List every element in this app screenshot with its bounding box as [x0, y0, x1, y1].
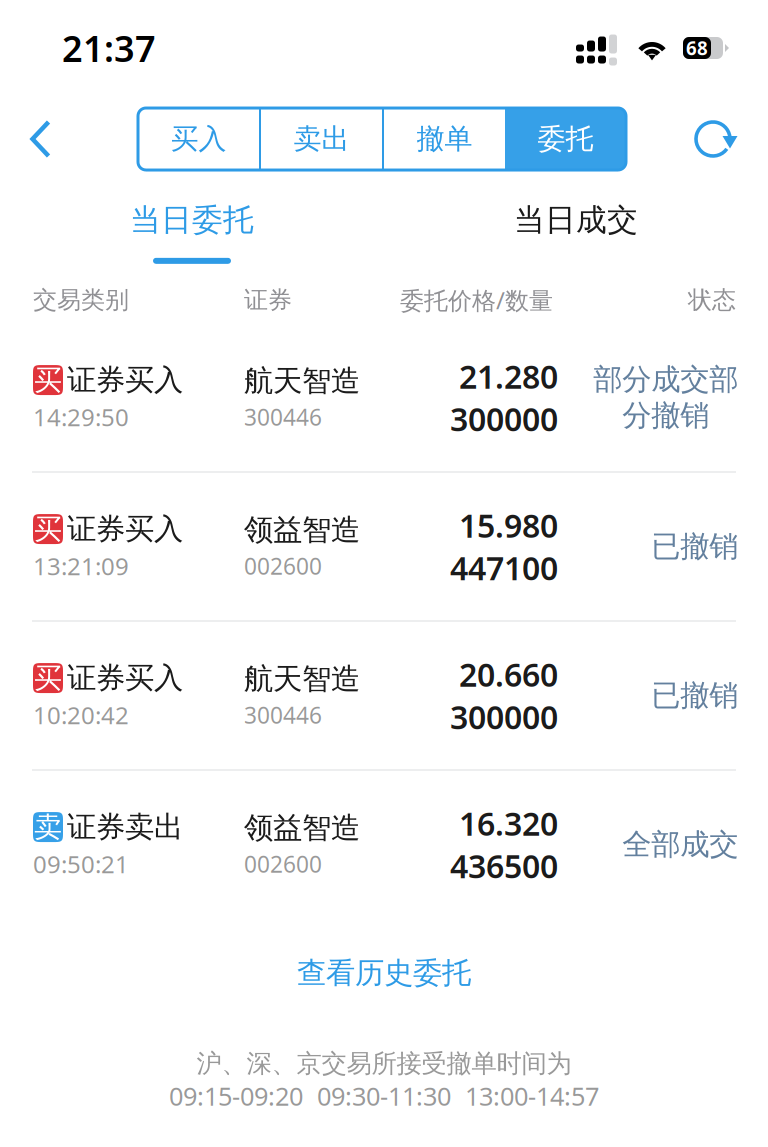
staticText: 002600	[244, 849, 322, 879]
staticText: 10:20:42	[33, 699, 129, 731]
staticText: 买	[34, 661, 62, 695]
button[interactable]: 当日成交	[384, 194, 768, 264]
staticText: 委托	[537, 122, 593, 156]
button[interactable]: 买	[0, 324, 768, 471]
staticText: 436500	[450, 844, 558, 887]
staticText: 300000	[450, 695, 558, 738]
staticText: 16.320	[459, 802, 558, 844]
button[interactable]: 当日委托	[0, 194, 384, 264]
staticText: 13:21:09	[33, 550, 129, 582]
staticText: 航天智造	[244, 363, 360, 399]
staticText: 当日成交	[514, 201, 638, 239]
staticText: 15.980	[459, 504, 558, 546]
staticText: 447100	[450, 546, 558, 589]
staticText: 沪、深、京交易所接受撤单时间为	[196, 1048, 571, 1079]
staticText: 部分成交部分撤销	[593, 361, 738, 434]
staticText: 买入	[170, 122, 226, 156]
staticText: 20.660	[459, 653, 558, 695]
staticText: 证券买入	[67, 660, 183, 696]
staticText: 09:15-09:20 09:30-11:30 13:00-14:57	[169, 1079, 599, 1113]
staticText: 证券买入	[67, 511, 183, 547]
button[interactable]: 买	[0, 473, 768, 620]
staticText: 领益智造	[244, 512, 360, 548]
button[interactable]: 卖出	[261, 108, 382, 170]
staticText: 卖出	[293, 122, 349, 156]
staticText: 68	[686, 36, 708, 60]
staticText: 当日委托	[130, 201, 254, 239]
staticText: 300446	[244, 402, 322, 432]
staticText: 委托价格/数量	[400, 284, 553, 316]
button[interactable]: Refresh	[692, 117, 736, 161]
staticText: 已撤销	[651, 677, 738, 713]
button[interactable]: Back	[10, 108, 72, 170]
staticText: 状态	[688, 285, 736, 315]
button[interactable]: 撤单	[384, 108, 505, 170]
button[interactable]: 买入	[138, 108, 259, 170]
staticText: 买	[34, 512, 62, 546]
button[interactable]: 买	[0, 622, 768, 769]
staticText: 14:29:50	[33, 401, 129, 433]
staticText: 航天智造	[244, 661, 360, 697]
staticText: 查看历史委托	[297, 955, 471, 991]
staticText: 证券买入	[67, 362, 183, 398]
staticText: 21:37	[62, 24, 156, 72]
staticText: 领益智造	[244, 810, 360, 846]
staticText: 卖	[34, 810, 62, 844]
staticText: 证券卖出	[67, 809, 183, 845]
staticText: 300000	[450, 397, 558, 440]
staticText: 09:50:21	[33, 848, 129, 880]
staticText: 证券	[244, 285, 292, 315]
staticText: 002600	[244, 551, 322, 581]
staticText: 交易类别	[33, 285, 129, 315]
staticText: 撤单	[416, 122, 472, 156]
staticText: 21.280	[459, 355, 558, 397]
button[interactable]: 查看历史委托	[0, 918, 768, 1028]
staticText: 买	[34, 363, 62, 397]
staticText: 已撤销	[651, 528, 738, 564]
staticText: 300446	[244, 700, 322, 730]
button[interactable]: 卖	[0, 771, 768, 918]
button[interactable]: 委托	[505, 108, 626, 170]
staticText: 全部成交	[622, 826, 738, 862]
